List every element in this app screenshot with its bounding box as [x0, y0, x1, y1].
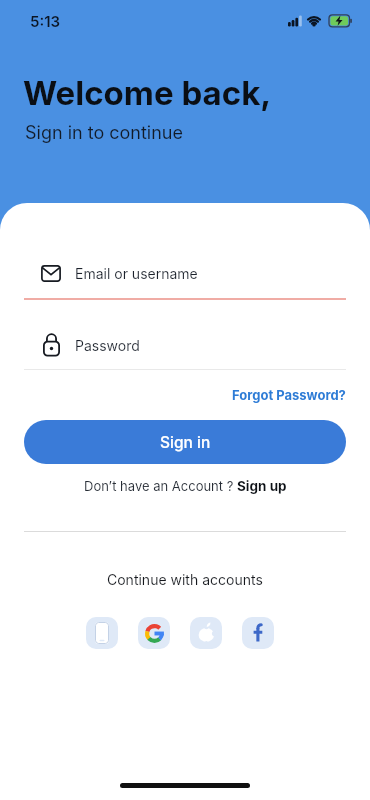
button[interactable]: Forgot Password?: [232, 387, 346, 403]
staticText: Email or username: [75, 265, 198, 282]
button[interactable]: [138, 617, 170, 649]
button[interactable]: Password: [24, 333, 346, 357]
staticText: Sign in to continue: [25, 122, 184, 144]
staticText: Welcome back,: [23, 73, 272, 113]
button[interactable]: Email or username: [24, 265, 346, 282]
staticText: 5:13: [30, 12, 61, 30]
button[interactable]: [86, 617, 118, 649]
staticText: Password: [75, 337, 140, 354]
staticText: Sign in: [160, 433, 211, 452]
button[interactable]: Sign in: [24, 420, 346, 464]
button[interactable]: [242, 617, 274, 649]
button[interactable]: Don’t have an Account ? Sign up: [24, 478, 346, 494]
button[interactable]: [190, 617, 222, 649]
staticText: Don’t have an Account ? Sign up: [84, 478, 287, 494]
staticText: Continue with accounts: [107, 571, 263, 588]
